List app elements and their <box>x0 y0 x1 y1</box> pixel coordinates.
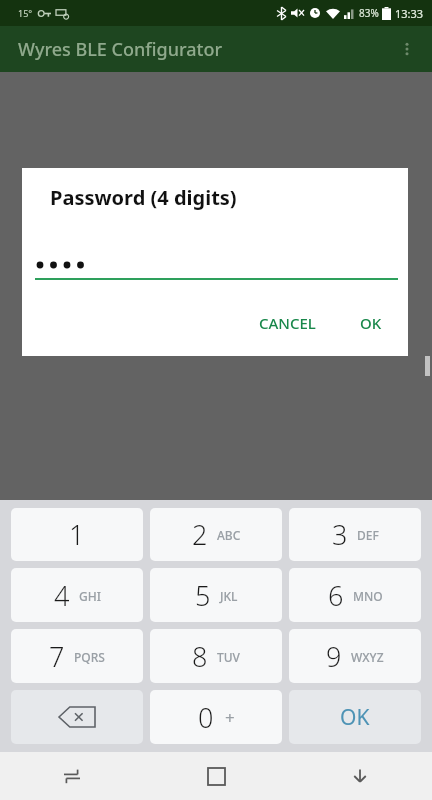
button[interactable] <box>0 0 432 800</box>
staticText: -4 <box>14 296 29 318</box>
button[interactable]: 9 <box>289 629 421 683</box>
button[interactable]: 1 <box>11 508 143 561</box>
staticText: 83% <box>359 6 379 20</box>
staticText: Wyres BLE Configurator <box>18 37 223 62</box>
button[interactable]: OK <box>289 690 421 744</box>
button[interactable]: Home <box>144 752 288 800</box>
button[interactable]: Backspace <box>11 690 143 744</box>
staticText: CANCEL <box>259 313 316 333</box>
staticText: 7 <box>49 638 65 675</box>
button[interactable]: 6 <box>289 568 421 622</box>
button[interactable]: 2 <box>150 508 282 561</box>
button[interactable]: 0 <box>150 690 282 744</box>
staticText: 13:33 <box>395 6 424 21</box>
staticText: OK <box>360 313 382 333</box>
staticText: 15° <box>18 7 33 19</box>
staticText: 4 <box>54 577 70 614</box>
staticText: 8 <box>192 638 208 675</box>
staticText: 6 <box>328 577 344 614</box>
button[interactable]: CANCEL <box>249 306 326 340</box>
staticText: Tx power (dBm) <box>14 265 117 284</box>
staticText: MNO <box>353 588 383 604</box>
staticText: + <box>225 706 235 729</box>
button[interactable]: Recents <box>0 752 144 800</box>
button[interactable]: 3 <box>289 508 421 561</box>
staticText: DEF <box>357 527 379 543</box>
staticText: GHI <box>79 588 101 604</box>
staticText: WXYZ <box>351 649 384 665</box>
staticText: 3000 <box>14 217 51 239</box>
button[interactable]: 4 <box>11 568 143 622</box>
button[interactable]: Hide keyboard <box>288 752 432 800</box>
staticText: 3 <box>332 516 348 553</box>
button[interactable]: OK <box>350 306 392 340</box>
staticText: OK <box>340 703 370 732</box>
button[interactable]: 7 <box>11 629 143 683</box>
button[interactable]: 8 <box>150 629 282 683</box>
staticText: 2 <box>192 516 208 553</box>
button[interactable]: More options <box>388 30 426 68</box>
staticText: TUV <box>217 649 240 665</box>
staticText: 1 <box>69 516 85 553</box>
staticText: 0 <box>198 699 214 736</box>
staticText: PQRS <box>74 649 105 665</box>
staticText: Password (4 digits) <box>50 184 237 211</box>
staticText: JKL <box>220 588 238 604</box>
staticText: 9 <box>326 638 342 675</box>
button[interactable]: 5 <box>150 568 282 622</box>
staticText: 5 <box>195 577 211 614</box>
staticText: ABC <box>217 527 241 543</box>
staticText: Adv interval (ms) <box>14 186 124 205</box>
